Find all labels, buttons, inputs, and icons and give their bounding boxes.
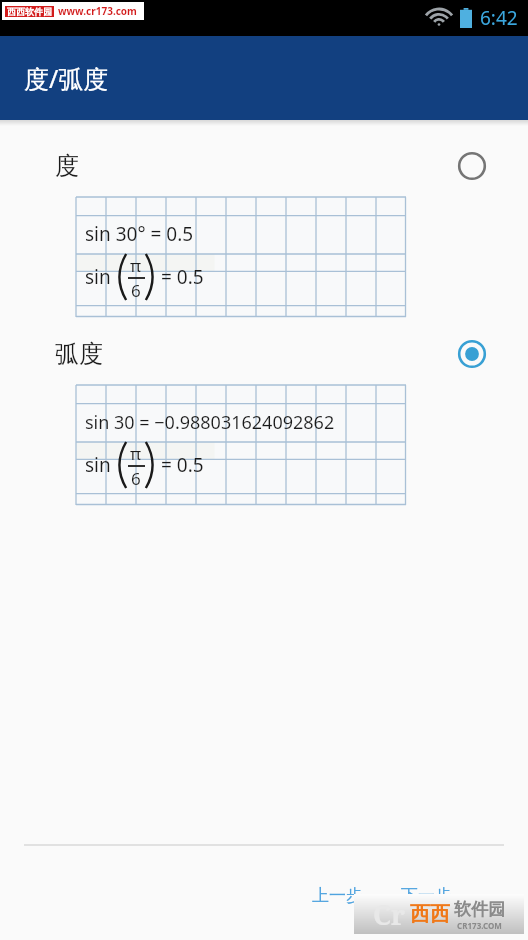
staticText: 6 xyxy=(131,467,141,488)
button[interactable]: 上一步 xyxy=(308,881,367,910)
staticText: = 0.5 xyxy=(161,264,204,290)
staticText: 弧度 xyxy=(55,339,103,369)
button[interactable]: 弧度 xyxy=(0,334,528,374)
button[interactable]: Selected xyxy=(452,334,492,374)
staticText: sin xyxy=(85,452,116,478)
staticText: 上一步 xyxy=(312,885,363,906)
button[interactable]: Not selected xyxy=(452,146,492,186)
staticText: 度/弧度 xyxy=(24,61,109,95)
button[interactable]: 度 xyxy=(0,146,528,186)
staticText: = 0.5 xyxy=(161,452,204,478)
staticText: 西西软件园 xyxy=(7,6,52,17)
staticText: www.cr173.com xyxy=(58,4,137,18)
staticText: π xyxy=(130,254,142,277)
staticText: CR173.COM xyxy=(457,920,502,931)
staticText: sin 30 = −0.988031624092862 xyxy=(85,410,335,435)
staticText: 6:42 xyxy=(480,5,518,31)
staticText: π xyxy=(130,442,142,465)
staticText: 度 xyxy=(55,151,79,181)
staticText: sin 30° = 0.5 xyxy=(85,221,194,247)
button[interactable]: 下一步 xyxy=(397,881,456,910)
staticText: Cr xyxy=(373,896,406,933)
staticText: sin xyxy=(85,264,116,290)
staticText: 西西 xyxy=(410,902,450,927)
staticText: 软件园 xyxy=(454,899,505,920)
staticText: 6 xyxy=(131,279,141,300)
staticText: 下一步 xyxy=(401,885,452,906)
